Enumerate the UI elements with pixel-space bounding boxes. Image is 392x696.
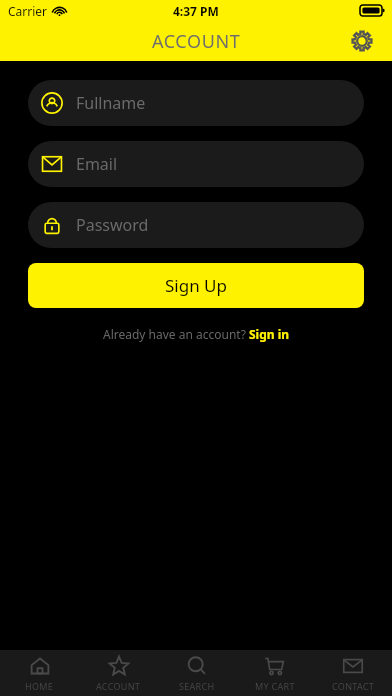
staticText: HOME xyxy=(25,680,54,692)
staticText: 4:37 PM xyxy=(173,3,219,19)
staticText: Carrier xyxy=(8,3,48,19)
staticText: SEARCH xyxy=(179,680,215,692)
staticText: Fullname xyxy=(76,92,146,114)
button[interactable]: HOME xyxy=(0,650,79,696)
staticText: Email xyxy=(76,153,118,175)
button[interactable]: Email xyxy=(28,141,364,187)
staticText: ACCOUNT xyxy=(152,29,241,54)
button[interactable]: ACCOUNT xyxy=(79,650,158,696)
button[interactable]: SEARCH xyxy=(158,650,236,696)
staticText: Password xyxy=(76,214,149,236)
staticText: Sign Up xyxy=(165,274,227,297)
staticText: ACCOUNT xyxy=(96,680,141,692)
button[interactable]: Already have an account? Sign in xyxy=(99,322,294,346)
button[interactable]: CONTACT xyxy=(314,650,392,696)
staticText: Already have an account? Sign in xyxy=(103,326,290,342)
button[interactable]: MY CART xyxy=(236,650,314,696)
button[interactable]: Settings xyxy=(342,21,382,61)
button[interactable]: Sign Up xyxy=(28,263,364,308)
staticText: MY CART xyxy=(255,680,295,692)
button[interactable]: Fullname xyxy=(28,80,364,126)
staticText: CONTACT xyxy=(332,680,375,692)
button[interactable]: Password xyxy=(28,202,364,248)
